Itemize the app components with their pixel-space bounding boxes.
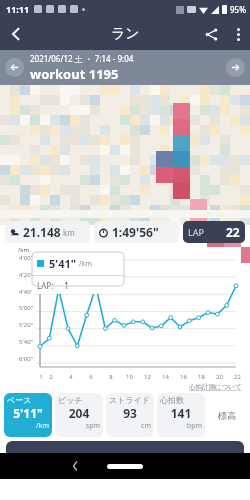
staticText: 14	[161, 373, 170, 381]
staticText: /km	[79, 259, 92, 269]
staticText: ラン	[111, 25, 140, 43]
button[interactable]: LAP	[188, 221, 240, 243]
staticText: /km	[18, 246, 30, 254]
button[interactable]: 5'41"	[32, 252, 124, 294]
staticText: ストライド	[109, 395, 150, 405]
staticText: 18	[197, 373, 206, 381]
staticText: 141	[160, 405, 202, 421]
button[interactable]: 心拍計測について	[189, 383, 242, 391]
button[interactable]: Back	[0, 18, 32, 50]
staticText: 5'00"	[19, 304, 34, 312]
staticText: 心拍数	[160, 395, 184, 405]
staticText: 11:11	[6, 3, 30, 15]
staticText: spm	[58, 421, 100, 431]
staticText: 2021/06/12 土 ・ 7:14 - 9:04	[30, 53, 134, 64]
button[interactable]: Previous workout	[5, 58, 24, 77]
button[interactable]: Share	[196, 19, 226, 49]
staticText: 22	[233, 373, 242, 381]
staticText: cm	[109, 421, 151, 431]
staticText: 8	[106, 373, 116, 381]
staticText: 95%	[230, 4, 246, 15]
staticText: ピッチ	[58, 395, 83, 405]
button[interactable]: Next workout	[226, 58, 245, 77]
button[interactable]: 標高	[208, 393, 246, 437]
button[interactable]	[6, 441, 244, 453]
staticText: 4	[66, 373, 76, 381]
staticText: 22	[226, 224, 240, 240]
staticText: workout 1195	[30, 65, 119, 83]
staticText: 1:49'56"	[112, 224, 159, 240]
staticText: 93	[109, 405, 151, 421]
staticText: bpm	[160, 421, 202, 431]
staticText: 1	[36, 373, 46, 381]
staticText: 2	[46, 373, 56, 381]
staticText: 20	[215, 373, 224, 381]
staticText: 5'40"	[19, 338, 34, 346]
staticText: 204	[58, 405, 100, 421]
staticText: 12	[143, 373, 152, 381]
staticText: 6'00"	[19, 355, 34, 363]
button[interactable]: 心拍数	[157, 393, 205, 437]
staticText: km	[63, 227, 75, 238]
button[interactable]: ピッチ	[55, 393, 103, 437]
staticText: 5'41"	[49, 256, 77, 271]
staticText: 10	[125, 373, 134, 381]
button[interactable]: More options	[226, 22, 250, 46]
staticText: 4'40"	[19, 288, 34, 296]
button[interactable]: ストライド	[106, 393, 154, 437]
staticText: 4'00"	[19, 254, 34, 262]
staticText: 6	[86, 373, 96, 381]
staticText: LAP	[188, 226, 204, 238]
staticText: /km	[7, 421, 49, 431]
staticText: ペース	[7, 395, 32, 405]
staticText: 21.148	[23, 224, 61, 240]
staticText: 5'20"	[19, 321, 34, 329]
staticText: 16	[179, 373, 188, 381]
button[interactable]: ペース	[4, 393, 52, 437]
staticText: 1	[64, 279, 70, 291]
button[interactable]: 1:49'56"	[99, 221, 174, 243]
staticText: 標高	[218, 410, 236, 421]
staticText: LAP:	[37, 280, 54, 291]
button[interactable]: 21.148	[10, 221, 85, 243]
staticText: 4'20"	[19, 271, 34, 279]
button[interactable]: Home	[107, 464, 143, 469]
button[interactable]: Back	[65, 456, 85, 476]
staticText: 5'11"	[7, 405, 49, 421]
button[interactable]: Route map	[0, 85, 250, 218]
